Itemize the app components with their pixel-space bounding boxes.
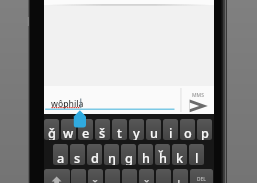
staticText: č [143, 176, 150, 183]
button[interactable]: d [87, 144, 102, 165]
button[interactable]: y [129, 119, 144, 140]
staticText: i [169, 124, 173, 140]
button[interactable] [44, 169, 70, 183]
button[interactable]: ǧ [44, 119, 59, 140]
button[interactable]: k [172, 144, 187, 165]
button[interactable]: ŋ [104, 144, 119, 165]
button[interactable]: ž [88, 169, 103, 183]
button[interactable]: u [146, 119, 161, 140]
staticText: o [184, 124, 192, 140]
staticText: wôphila [51, 98, 84, 110]
button[interactable]: g [121, 144, 136, 165]
staticText: p [201, 124, 209, 140]
staticText: ȟ [159, 149, 167, 165]
button[interactable]: i [163, 119, 178, 140]
staticText: k [176, 149, 184, 165]
button[interactable]: c [122, 169, 137, 183]
button[interactable]: o [180, 119, 195, 140]
button[interactable]: e [78, 119, 93, 140]
staticText: a [57, 149, 65, 165]
button[interactable]: ȟ [155, 144, 170, 165]
staticText: e [82, 124, 90, 140]
staticText: d [91, 149, 99, 165]
staticText: g [125, 149, 133, 165]
button[interactable] [44, 86, 214, 114]
button[interactable]: t [112, 119, 127, 140]
staticText: MMS [192, 92, 204, 99]
staticText: ž [92, 176, 99, 183]
button[interactable]: h [138, 144, 153, 165]
button[interactable]: s [70, 144, 85, 165]
staticText: t [117, 124, 122, 140]
button[interactable]: a [53, 144, 68, 165]
button[interactable]: DEL [190, 169, 213, 183]
staticText: š [99, 124, 106, 140]
staticText: DEL [197, 176, 206, 183]
button[interactable]: z [71, 169, 86, 183]
button[interactable]: č [139, 169, 154, 183]
button[interactable]: b [173, 169, 188, 183]
button[interactable]: w [61, 119, 76, 140]
staticText: s [74, 149, 81, 165]
staticText: u [150, 124, 158, 140]
button[interactable]: l [189, 144, 204, 165]
staticText: l [195, 149, 199, 165]
staticText: b [177, 176, 185, 183]
button[interactable] [184, 96, 208, 113]
staticText: ŋ [108, 149, 116, 165]
button[interactable]: x [105, 169, 120, 183]
staticText: h [142, 149, 150, 165]
button[interactable]: š [95, 119, 110, 140]
staticText: y [133, 124, 140, 140]
staticText: w [63, 124, 74, 140]
button[interactable]: v [156, 169, 171, 183]
staticText: ǧ [48, 124, 56, 140]
button[interactable]: p [197, 119, 212, 140]
